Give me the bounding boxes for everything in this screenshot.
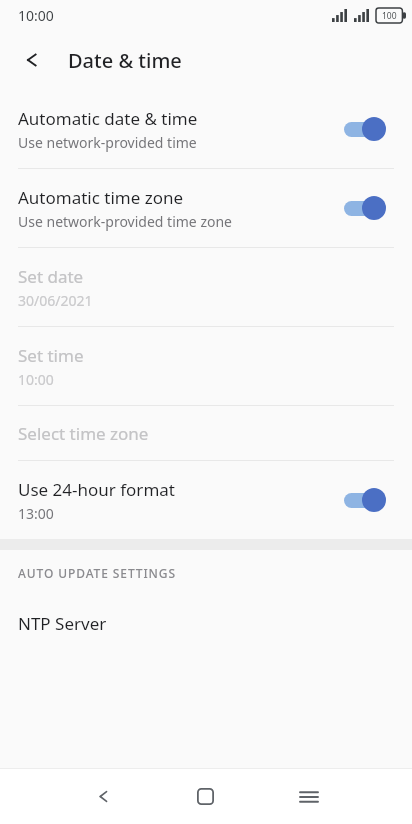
- staticText: Use network-provided time: [18, 133, 197, 152]
- staticText: 30/06/2021: [18, 291, 93, 310]
- button[interactable]: Set time: [0, 327, 412, 405]
- button[interactable]: Back: [52, 769, 154, 824]
- button[interactable]: Back: [10, 38, 54, 82]
- button[interactable]: Use 24-hour format: [0, 461, 412, 539]
- staticText: Date & time: [68, 47, 182, 74]
- staticText: Automatic time zone: [18, 186, 184, 209]
- button[interactable]: Automatic date & time: [0, 90, 412, 168]
- staticText: Use 24-hour format: [18, 478, 175, 501]
- button[interactable]: Set date: [0, 248, 412, 326]
- staticText: 100: [382, 10, 397, 22]
- button[interactable]: Automatic time zone: [0, 169, 412, 247]
- button[interactable]: Toggle: [342, 485, 394, 515]
- button[interactable]: Toggle: [342, 193, 394, 223]
- staticText: Set time: [18, 344, 84, 367]
- button[interactable]: NTP Server: [0, 596, 412, 650]
- staticText: 10:00: [18, 6, 54, 25]
- button[interactable]: Toggle: [342, 114, 394, 144]
- staticText: Select time zone: [18, 422, 149, 445]
- button[interactable]: Recent apps: [257, 769, 360, 824]
- staticText: Automatic date & time: [18, 107, 198, 130]
- staticText: AUTO UPDATE SETTINGS: [18, 565, 176, 581]
- staticText: 10:00: [18, 370, 54, 389]
- staticText: Set date: [18, 265, 84, 288]
- staticText: Use network-provided time zone: [18, 212, 232, 231]
- button[interactable]: Select time zone: [0, 406, 412, 460]
- button[interactable]: Home: [154, 769, 257, 824]
- staticText: NTP Server: [18, 612, 107, 635]
- staticText: 13:00: [18, 504, 54, 523]
